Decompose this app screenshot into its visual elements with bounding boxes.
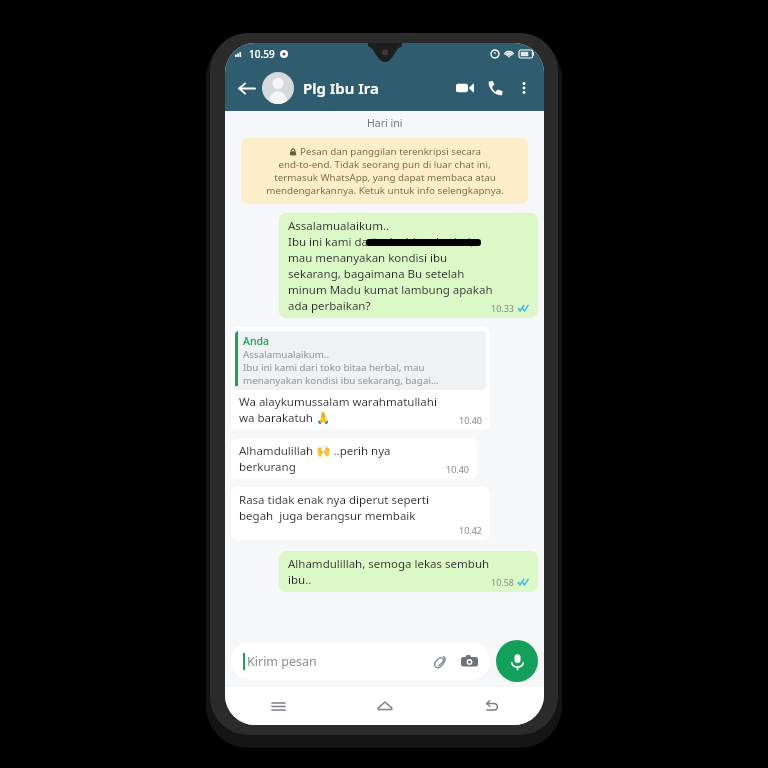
staticText: Hari ini	[367, 116, 403, 130]
staticText: Wa alaykumussalam warahmatullahi	[239, 394, 437, 410]
staticText: 10.42	[459, 524, 483, 536]
staticText: Rasa tidak enak nya diperut seperti	[239, 492, 429, 508]
button[interactable]: Call	[480, 73, 510, 103]
button[interactable]: Plg Ibu Ira	[303, 78, 450, 98]
button[interactable]: Voice message	[496, 640, 538, 682]
staticText: begah juga berangsur membaik	[239, 508, 416, 524]
staticText: minum Madu kumat lambung apakah	[288, 282, 493, 298]
button[interactable]: Alhamdulillah, semoga lekas sembuh	[279, 551, 538, 592]
staticText: 10.58	[491, 576, 515, 588]
staticText: ada perbaikan?	[288, 298, 371, 314]
button[interactable]: Home	[363, 687, 407, 725]
staticText: 10.59	[249, 47, 275, 61]
staticText: sekarang, bagaimana Bu setelah	[288, 266, 465, 282]
staticText: Pesan dan panggilan terenkripsi secara	[300, 145, 481, 158]
button[interactable]: Anda	[231, 327, 490, 430]
staticText: Alhamdulillah 🙌 ..perih nya	[239, 443, 391, 459]
staticText: ibu..	[288, 572, 312, 588]
button[interactable]: Camera	[458, 650, 480, 672]
staticText: 10.40	[459, 414, 483, 426]
button[interactable]: Attach	[429, 650, 451, 672]
button[interactable]: Kirim pesan	[231, 642, 490, 680]
staticText: termasuk WhatsApp, yang dapat membaca at…	[274, 171, 496, 184]
staticText: Alhamdulillah, semoga lekas sembuh	[288, 556, 490, 572]
button[interactable]: Video call	[450, 73, 480, 103]
button[interactable]: Recents	[256, 687, 300, 725]
button[interactable]: More options	[510, 74, 538, 102]
staticText: berkurang	[239, 459, 296, 475]
staticText: Assalamualaikum..	[288, 218, 390, 234]
staticText: end-to-end. Tidak seorang pun di luar ch…	[278, 158, 491, 171]
staticText: Kirim pesan	[247, 653, 317, 670]
staticText: wa barakatuh 🙏	[239, 410, 331, 426]
staticText: mau menanyakan kondisi ibu	[288, 250, 448, 266]
staticText: Assalamualaikum..	[243, 348, 330, 361]
button[interactable]: Assalamualaikum..	[279, 213, 538, 318]
staticText: mendengarkannya. Ketuk untuk info seleng…	[266, 184, 504, 197]
button[interactable]: Alhamdulillah 🙌 ..perih nya	[231, 438, 477, 479]
staticText: 10.40	[446, 463, 470, 475]
staticText: menanyakan kondisi ibu sekarang, bagai…	[243, 374, 439, 387]
button[interactable]: Pesan dan panggilan terenkripsi secara	[241, 138, 528, 204]
button[interactable]: Back	[231, 73, 261, 103]
button[interactable]: Back	[469, 687, 513, 725]
staticText: Ibu ini kami dari toko bitaa herbal, mau	[243, 361, 425, 374]
staticText: Plg Ibu Ira	[303, 78, 379, 98]
staticText: Ibu ini kami dari toko bitaa herbal,	[288, 234, 474, 250]
staticText: Anda	[243, 334, 269, 348]
staticText: 10.33	[491, 302, 515, 314]
button[interactable]: Rasa tidak enak nya diperut seperti	[231, 487, 490, 540]
